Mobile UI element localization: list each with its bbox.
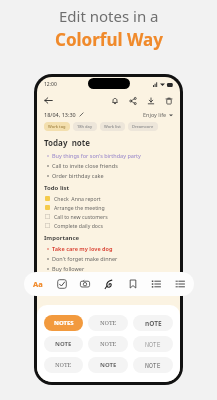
button[interactable]: Complete daily docs	[44, 222, 173, 229]
staticText: 12:00	[44, 81, 57, 88]
staticText: NOTE	[145, 340, 161, 349]
staticText: Today note	[44, 137, 91, 148]
button[interactable]: Delete	[163, 95, 174, 106]
button[interactable]: Back	[43, 95, 54, 106]
button[interactable]: Call to invite close friends	[44, 162, 173, 169]
staticText: Enjoy life	[143, 111, 167, 118]
button[interactable]: Work list	[100, 122, 125, 131]
staticText: Arrange the meeting	[54, 204, 105, 211]
staticText: NOTE	[55, 361, 72, 369]
staticText: Call to new customers	[54, 213, 108, 220]
staticText: Order birthday cake	[52, 172, 104, 179]
staticText: NOTE	[100, 361, 117, 369]
button[interactable]: NOTE	[44, 357, 83, 373]
button[interactable]: Call to new customers	[44, 213, 173, 220]
button[interactable]: nOTE	[133, 315, 173, 331]
staticText: Call to invite close friends	[52, 162, 118, 169]
staticText: 18h day	[77, 124, 93, 129]
button[interactable]: NOTE	[44, 336, 83, 352]
staticText: Todo list	[44, 184, 70, 192]
button[interactable]: Bookmark	[124, 275, 142, 293]
button[interactable]: Share	[127, 95, 138, 106]
button[interactable]: 18h day	[73, 122, 97, 131]
staticText: NOTE	[100, 340, 117, 348]
button[interactable]: Text style	[29, 275, 47, 293]
staticText: Complete daily docs	[54, 222, 103, 229]
button[interactable]: NOTE	[133, 336, 173, 352]
button[interactable]: Download	[145, 95, 156, 106]
staticText: Edit notes in a	[59, 6, 159, 26]
staticText: Buy follower	[52, 265, 85, 272]
button[interactable]: Camera	[76, 275, 94, 293]
button[interactable]: Bulleted list	[147, 275, 165, 293]
button[interactable]: Work tag	[44, 122, 70, 131]
button[interactable]: Draw	[100, 275, 118, 293]
staticText: NOTE	[100, 319, 117, 327]
button[interactable]: Don't forget make dinner	[44, 255, 173, 262]
button[interactable]: NOTES	[44, 315, 83, 331]
staticText: NOTES	[54, 319, 74, 327]
button[interactable]: Numbered list	[171, 275, 189, 293]
staticText: NOTE	[55, 340, 72, 348]
staticText: Work tag	[48, 124, 66, 129]
staticText: Buy things for son's birthday party	[52, 152, 141, 159]
button[interactable]: NOTE	[133, 357, 173, 373]
button[interactable]: NOTE	[88, 336, 128, 352]
button[interactable]: Checklist	[53, 275, 71, 293]
staticText: Check Anna report	[54, 195, 101, 202]
staticText: NOTE	[145, 361, 161, 370]
button[interactable]: Take care my love dog	[44, 245, 173, 252]
button[interactable]: Order birthday cake	[44, 172, 173, 179]
staticText: Don't forget make dinner	[52, 255, 118, 262]
button[interactable]: Notifications	[109, 95, 120, 106]
button[interactable]: Check Anna report	[44, 195, 173, 202]
button[interactable]: Buy follower	[44, 265, 173, 272]
button[interactable]: NOTE	[88, 315, 128, 331]
staticText: Dreamcore	[132, 124, 154, 129]
staticText: Importance	[44, 234, 80, 242]
button[interactable]: Arrange the meeting	[44, 204, 173, 211]
staticText: Take care my love dog	[52, 245, 113, 252]
staticText: Colorful Way	[55, 28, 163, 51]
staticText: 18/04, 13:30	[44, 111, 76, 118]
staticText: Aa	[33, 279, 43, 289]
staticText: nOTE	[145, 319, 162, 328]
button[interactable]: Dreamcore	[128, 122, 158, 131]
staticText: Work list	[104, 124, 121, 129]
button[interactable]: Buy things for son's birthday party	[44, 152, 173, 159]
button[interactable]: Enjoy life	[143, 111, 173, 118]
button[interactable]: NOTE	[88, 357, 128, 373]
